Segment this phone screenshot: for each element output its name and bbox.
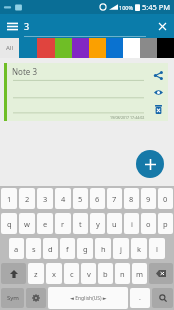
staticText: o xyxy=(146,219,151,229)
staticText: 9 xyxy=(146,194,151,204)
button[interactable]: p xyxy=(158,213,173,234)
staticText: 19/08/2017 17:44:02 xyxy=(110,115,145,120)
button[interactable]: All xyxy=(0,38,19,58)
staticText: v xyxy=(87,269,91,279)
staticText: n xyxy=(120,269,125,279)
button[interactable]: Add note xyxy=(136,150,164,178)
button[interactable]: 3 xyxy=(37,188,53,209)
staticText: l xyxy=(156,244,158,254)
button[interactable]: d xyxy=(43,238,58,259)
button[interactable]: 7 xyxy=(107,188,122,209)
button[interactable]: 3 xyxy=(24,14,150,38)
button[interactable]: z xyxy=(28,263,44,284)
button[interactable]: v xyxy=(81,263,96,284)
button[interactable]: e xyxy=(37,213,53,234)
button[interactable]: x xyxy=(46,263,62,284)
button[interactable]: View xyxy=(151,85,165,99)
staticText: a xyxy=(14,244,19,254)
button[interactable]: q xyxy=(1,213,17,234)
button[interactable]: r xyxy=(55,213,71,234)
staticText: h xyxy=(101,244,106,254)
staticText: p xyxy=(163,219,168,229)
button[interactable]: t xyxy=(73,213,88,234)
staticText: m xyxy=(136,269,144,279)
staticText: e xyxy=(43,219,48,229)
button[interactable]: 4 xyxy=(55,188,71,209)
button[interactable]: Clear xyxy=(150,14,174,38)
button[interactable]: Sym xyxy=(1,288,24,308)
button[interactable]: a xyxy=(9,238,24,259)
button[interactable]: 1 xyxy=(1,188,17,209)
staticText: s xyxy=(32,244,36,254)
staticText: 8 xyxy=(129,194,134,204)
button[interactable]: 8 xyxy=(124,188,139,209)
button[interactable]: 9 xyxy=(141,188,156,209)
staticText: . xyxy=(139,293,141,303)
staticText: d xyxy=(48,244,53,254)
staticText: i xyxy=(131,219,133,229)
staticText: 1 xyxy=(7,194,12,204)
staticText: g xyxy=(83,244,88,254)
staticText: 4 xyxy=(61,194,66,204)
staticText: q xyxy=(7,219,12,229)
staticText: r xyxy=(61,219,65,229)
button[interactable]: c xyxy=(64,263,79,284)
button[interactable]: i xyxy=(124,213,139,234)
button[interactable]: b xyxy=(98,263,113,284)
button[interactable]: Menu xyxy=(0,14,24,38)
button[interactable]: Backspace xyxy=(149,263,173,284)
button[interactable]: 2 xyxy=(19,188,35,209)
button[interactable]: y xyxy=(90,213,105,234)
button[interactable]: f xyxy=(60,238,75,259)
staticText: x xyxy=(52,269,56,279)
staticText: Sym xyxy=(7,294,19,302)
staticText: 6 xyxy=(95,194,100,204)
button[interactable]: 6 xyxy=(90,188,105,209)
button[interactable]: Delete xyxy=(151,102,165,116)
staticText: ◄ English(US) ► xyxy=(70,295,107,302)
staticText: f xyxy=(66,244,69,254)
button[interactable]: j xyxy=(113,238,129,259)
staticText: j xyxy=(120,244,122,254)
staticText: u xyxy=(112,219,117,229)
button[interactable]: ◄ English(US) ► xyxy=(48,287,128,309)
button[interactable]: Search xyxy=(152,288,173,308)
staticText: 0 xyxy=(163,194,168,204)
button[interactable]: 0 xyxy=(158,188,173,209)
button[interactable]: l xyxy=(149,238,165,259)
staticText: y xyxy=(96,219,100,229)
button[interactable]: . xyxy=(130,288,150,308)
button[interactable]: Share xyxy=(151,68,165,82)
button[interactable]: g xyxy=(77,238,93,259)
button[interactable]: n xyxy=(115,263,130,284)
button[interactable]: Settings xyxy=(26,288,46,308)
button[interactable]: h xyxy=(95,238,111,259)
button[interactable]: 5 xyxy=(73,188,88,209)
staticText: b xyxy=(103,269,108,279)
staticText: 100% xyxy=(119,4,134,11)
button[interactable]: s xyxy=(26,238,41,259)
staticText: w xyxy=(24,219,30,229)
staticText: c xyxy=(70,269,74,279)
button[interactable]: u xyxy=(107,213,122,234)
staticText: 2 xyxy=(25,194,30,204)
staticText: k xyxy=(137,244,142,254)
button[interactable]: Shift xyxy=(1,263,26,284)
button[interactable]: w xyxy=(19,213,35,234)
staticText: 3 xyxy=(24,20,30,32)
button[interactable]: o xyxy=(141,213,156,234)
staticText: 3 xyxy=(43,194,48,204)
staticText: t xyxy=(79,219,82,229)
button[interactable]: k xyxy=(131,238,147,259)
button[interactable]: m xyxy=(132,263,147,284)
staticText: Note 3 xyxy=(12,66,37,77)
